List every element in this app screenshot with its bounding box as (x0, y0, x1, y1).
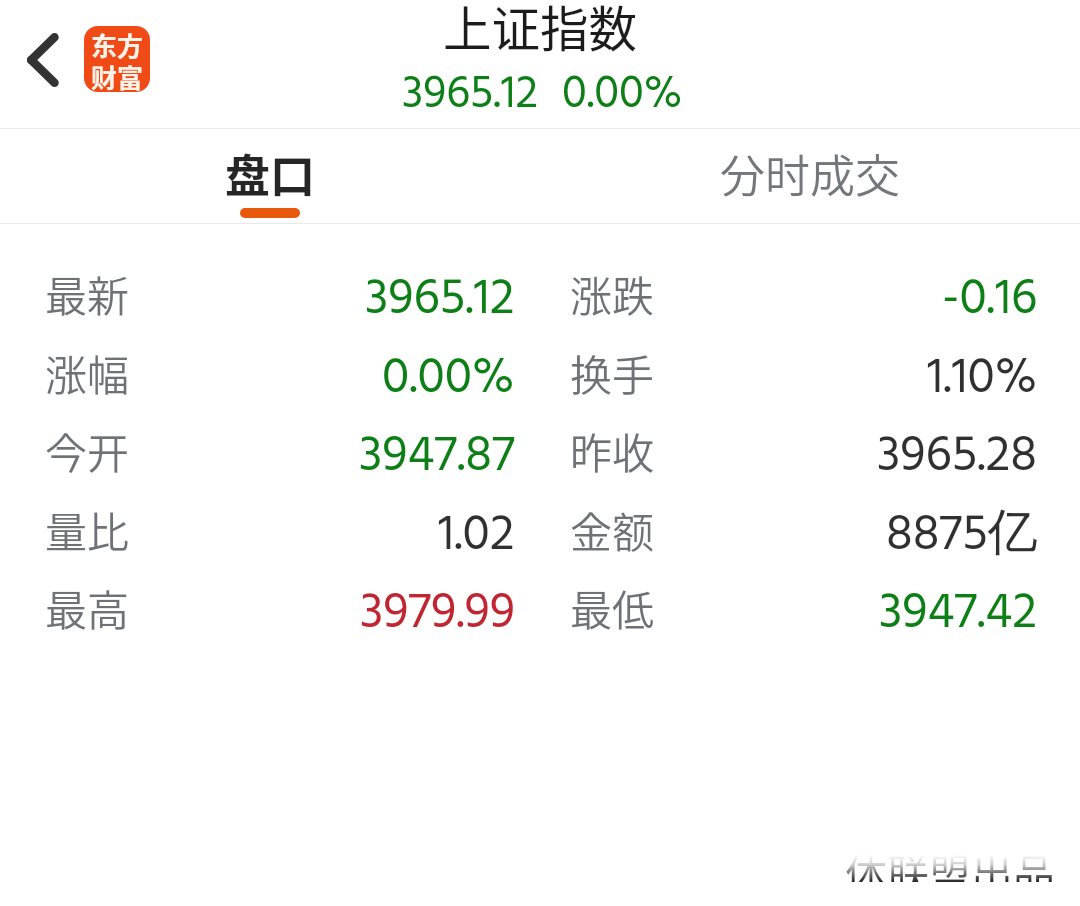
staticText: 3965.28 (877, 417, 1038, 479)
staticText: 1.02 (438, 496, 515, 558)
staticText: 上证指数 (443, 0, 638, 61)
button[interactable]: 盘口 (0, 127, 540, 221)
staticText: 1.10% (927, 339, 1038, 401)
staticText: 昨收 (570, 420, 655, 481)
staticText: -0.16 (942, 260, 1038, 322)
staticText: 3965.12 (402, 59, 538, 132)
staticText: 涨跌 (570, 263, 655, 324)
staticText: 最高 (45, 577, 130, 638)
button[interactable]: East Money home (84, 26, 150, 92)
staticText: 量比 (45, 499, 130, 560)
staticText: 3947.42 (879, 574, 1038, 636)
staticText: 换手 (570, 342, 655, 403)
staticText: 涨幅 (45, 342, 130, 403)
button[interactable]: 分时成交 (540, 127, 1080, 221)
staticText: 3965.12 (365, 260, 515, 322)
staticText: 金额 (570, 499, 655, 560)
button[interactable]: Back (0, 12, 90, 108)
staticText: 0.00% (562, 59, 683, 132)
staticText: 最新 (45, 263, 130, 324)
staticText: 最低 (570, 577, 655, 638)
staticText: 3979.99 (360, 574, 515, 636)
staticText: 今开 (45, 420, 130, 481)
staticText: 盘口 (225, 141, 316, 206)
staticText: 8875亿 (886, 496, 1038, 558)
staticText: 3947.87 (359, 417, 515, 479)
staticText: 分时成交 (720, 141, 901, 206)
staticText: 财富 (91, 58, 144, 92)
staticText: 体联盟出品 (845, 841, 1056, 882)
staticText: 0.00% (382, 339, 515, 401)
staticText: 东方 (91, 26, 144, 64)
